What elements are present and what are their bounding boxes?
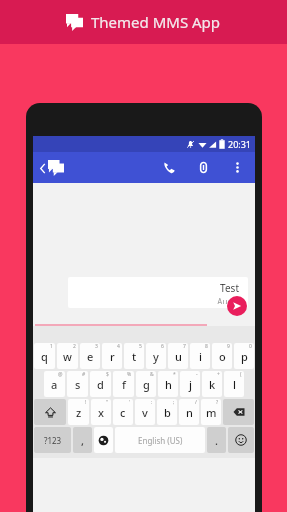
staticText: ( [240,371,242,378]
staticText: 8 [205,343,208,350]
button[interactable]: Themed MMS App [0,0,287,44]
staticText: j [189,377,192,392]
button[interactable]: ?123 [34,427,71,453]
button[interactable]: Send [227,296,247,316]
staticText: b [164,405,171,420]
button[interactable]: Call [157,155,182,180]
staticText: ?123 [44,435,62,446]
staticText: s [75,377,81,392]
button[interactable]: Shift [34,399,66,425]
staticText: o [219,349,226,364]
button[interactable]: Attach [191,155,216,180]
staticText: @ [58,371,63,378]
staticText: ! [85,399,87,406]
button[interactable]: b [157,399,177,425]
button[interactable]: x [91,399,111,425]
staticText: r [110,349,115,364]
staticText: + [217,371,220,378]
button[interactable]: i [190,343,210,369]
staticText: Test [220,281,239,295]
staticText: m [206,405,217,420]
button[interactable]: Backspace [223,399,254,425]
staticText: 6 [161,343,164,350]
staticText: y [153,349,159,364]
staticText: , [81,433,85,448]
button[interactable]: Emoji [228,427,254,453]
staticText: * [173,371,176,378]
staticText: - [196,371,198,378]
button[interactable]: p [234,343,254,369]
button[interactable]: d [90,371,111,397]
staticText: $ [106,371,109,378]
button[interactable]: k [202,371,222,397]
staticText: Themed MMS App [91,12,221,32]
staticText: . [215,433,218,448]
staticText: English (US) [138,435,183,446]
staticText: h [165,377,172,392]
staticText: n [186,405,193,420]
staticText: e [87,349,94,364]
button[interactable]: f [113,371,134,397]
staticText: 0 [249,343,252,350]
staticText: 1 [50,343,53,350]
button[interactable]: m [201,399,221,425]
staticText: 2 [73,343,76,350]
staticText: ; [173,399,175,406]
staticText: a [51,377,58,392]
button[interactable]: v [135,399,155,425]
button[interactable]: Back to conversations [38,156,66,180]
button[interactable]: More options [225,155,250,180]
staticText: & [150,371,154,378]
staticText: c [120,405,126,420]
staticText: p [241,349,248,364]
button[interactable]: e [80,343,100,369]
staticText: z [76,405,82,420]
button[interactable]: Test [68,277,248,308]
button[interactable]: y [146,343,166,369]
button[interactable]: j [180,371,200,397]
button[interactable]: q [34,343,55,369]
staticText: w [63,349,72,364]
staticText: q [41,349,48,364]
staticText: f [122,377,126,392]
button[interactable]: c [113,399,133,425]
button[interactable]: Change language [94,427,113,453]
staticText: : [151,399,153,406]
button[interactable]: w [57,343,78,369]
button[interactable]: English (US) [115,427,205,453]
staticText: # [82,371,86,378]
staticText: 7 [183,343,186,350]
staticText: 5 [139,343,142,350]
staticText: k [209,377,216,392]
staticText: u [175,349,182,364]
button[interactable]: o [212,343,232,369]
button[interactable]: z [68,399,89,425]
button[interactable]: a [44,371,65,397]
button[interactable]: u [168,343,188,369]
staticText: Aug 6 [217,296,239,304]
button[interactable]: s [67,371,88,397]
staticText: 9 [227,343,230,350]
button[interactable]: . [207,427,226,453]
button[interactable]: l [224,371,244,397]
staticText: g [143,377,150,392]
staticText: ? [216,399,219,406]
button[interactable]: g [136,371,156,397]
button[interactable]: , [73,427,92,453]
button[interactable]: h [158,371,178,397]
staticText: d [97,377,104,392]
button[interactable]: t [124,343,144,369]
staticText: 4 [117,343,120,350]
staticText: " [106,399,109,406]
staticText: % [127,371,132,378]
staticText: l [233,377,236,392]
button[interactable]: r [102,343,122,369]
staticText: v [142,405,148,420]
staticText: x [98,405,104,420]
button[interactable]: n [179,399,199,425]
staticText: / [195,399,197,406]
staticText: i [199,349,202,364]
staticText: 20:31 [228,138,252,150]
staticText: 3 [95,343,98,350]
staticText: t [132,349,137,364]
